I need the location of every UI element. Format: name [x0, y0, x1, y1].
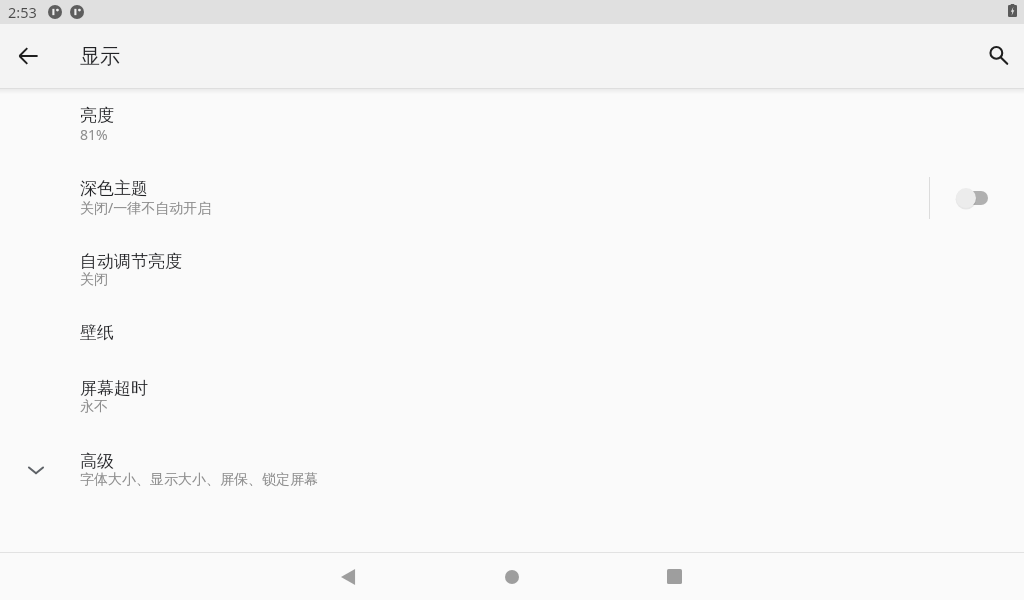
staticText: 深色主题 — [80, 178, 148, 199]
button[interactable]: 自动调节亮度 — [0, 234, 1024, 307]
staticText: 高级 — [80, 451, 114, 472]
staticText: 亮度 — [80, 105, 114, 126]
staticText: 关闭/一律不自动开启 — [80, 198, 212, 217]
staticText: 关闭 — [80, 271, 108, 289]
staticText: 字体大小、显示大小、屏保、锁定屏幕 — [80, 471, 318, 489]
button[interactable]: 壁纸 — [0, 307, 1024, 361]
button[interactable]: 亮度 — [0, 88, 1024, 161]
staticText: 永不 — [80, 398, 108, 416]
button[interactable]: 屏幕超时 — [0, 361, 1024, 434]
staticText: 显示 — [80, 44, 120, 69]
button[interactable]: Search — [975, 32, 1023, 80]
staticText: 81% — [80, 125, 108, 144]
staticText: 自动调节亮度 — [80, 251, 182, 272]
button[interactable]: Dark theme switch, off — [936, 161, 1008, 234]
button[interactable]: 高级 — [0, 434, 1024, 507]
button[interactable]: Recents — [650, 553, 698, 600]
button[interactable]: 深色主题 — [0, 161, 1024, 234]
staticText: 壁纸 — [80, 322, 114, 343]
staticText: 屏幕超时 — [80, 378, 148, 399]
button[interactable]: Home — [488, 553, 536, 600]
button[interactable]: Back — [4, 32, 52, 80]
staticText: 2:53 — [8, 2, 37, 22]
button[interactable]: Back — [325, 553, 373, 600]
